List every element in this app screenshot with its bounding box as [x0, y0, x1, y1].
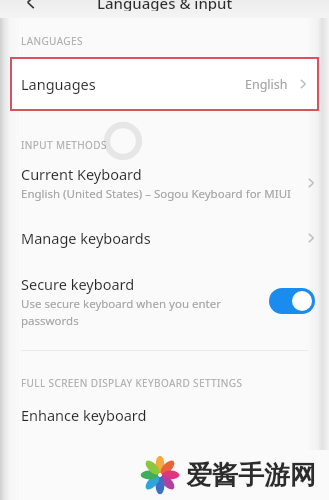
staticText: Manage keyboards	[21, 228, 305, 248]
staticText: FULL SCREEN DISPLAY KEYBOARD SETTINGS	[21, 376, 243, 390]
button[interactable]: Secure keyboard toggle	[269, 288, 315, 314]
button[interactable]: Secure keyboard	[0, 274, 329, 328]
button[interactable]: Enhance keyboard	[0, 400, 329, 430]
staticText: Languages	[21, 74, 245, 94]
staticText: LANGUAGES	[21, 34, 83, 48]
staticText: Use secure keyboard when you enter passw…	[21, 296, 259, 328]
staticText: Enhance keyboard	[21, 405, 147, 425]
staticText: English (United States) – Sogou Keyboard…	[21, 186, 291, 202]
button[interactable]: Current Keyboard	[0, 160, 329, 208]
button[interactable]: Manage keyboards	[0, 224, 329, 252]
button[interactable]: Back	[14, 0, 48, 11]
staticText: Languages & input	[97, 0, 233, 11]
staticText: Secure keyboard	[21, 274, 135, 294]
staticText: Current Keyboard	[21, 164, 142, 184]
staticText: 爱酱手游网	[186, 459, 316, 492]
staticText: INPUT METHODS	[21, 138, 107, 152]
staticText: English	[245, 76, 288, 93]
button[interactable]: Languages	[10, 57, 319, 111]
